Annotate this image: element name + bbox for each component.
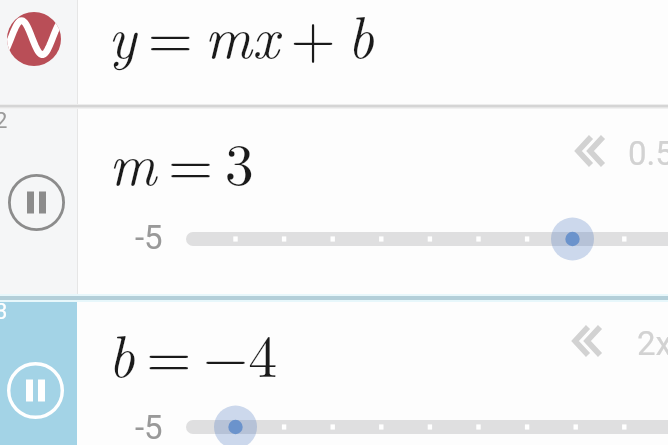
button[interactable]: Play slider for b [0,301,77,445]
button[interactable]: Slider speed 0.5 [574,126,668,176]
staticText: -5 [135,408,163,445]
button[interactable] [78,107,668,296]
button[interactable]: Slider speed 2x [571,316,668,366]
staticText: 2x [637,324,668,363]
staticText: y = mx + b [108,0,374,75]
staticText: m = 3 [109,120,254,202]
button[interactable] [77,301,668,445]
button[interactable] [78,0,668,105]
button[interactable]: Toggle graph visibility [0,0,77,105]
button[interactable]: Play slider for m [0,107,77,296]
staticText: b = −4 [108,312,278,394]
staticText: 3 [0,299,8,325]
staticText: 2 [0,108,8,134]
staticText: 0.5 [628,134,668,173]
staticText: -5 [135,218,163,257]
